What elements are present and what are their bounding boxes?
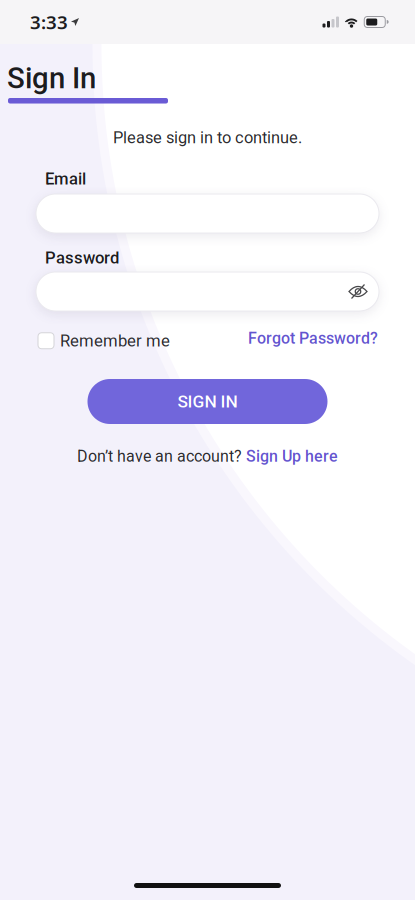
button[interactable]: Remember me: [38, 331, 170, 350]
staticText: SIGN IN: [177, 391, 237, 412]
staticText: Sign Up here: [246, 447, 338, 466]
button[interactable]: SIGN IN: [87, 379, 327, 424]
button[interactable]: Show password: [349, 285, 379, 297]
staticText: 3:33: [30, 10, 68, 34]
staticText: Email: [45, 169, 86, 188]
button[interactable]: Don’t have an account?: [77, 447, 338, 466]
staticText: Please sign in to continue.: [113, 128, 302, 147]
staticText: Password: [45, 248, 119, 267]
staticText: Remember me: [60, 331, 170, 350]
button[interactable]: Forgot Password?: [248, 329, 378, 348]
staticText: Forgot Password?: [248, 329, 378, 348]
staticText: Sign In: [7, 61, 96, 95]
staticText: Don’t have an account?: [77, 447, 242, 466]
